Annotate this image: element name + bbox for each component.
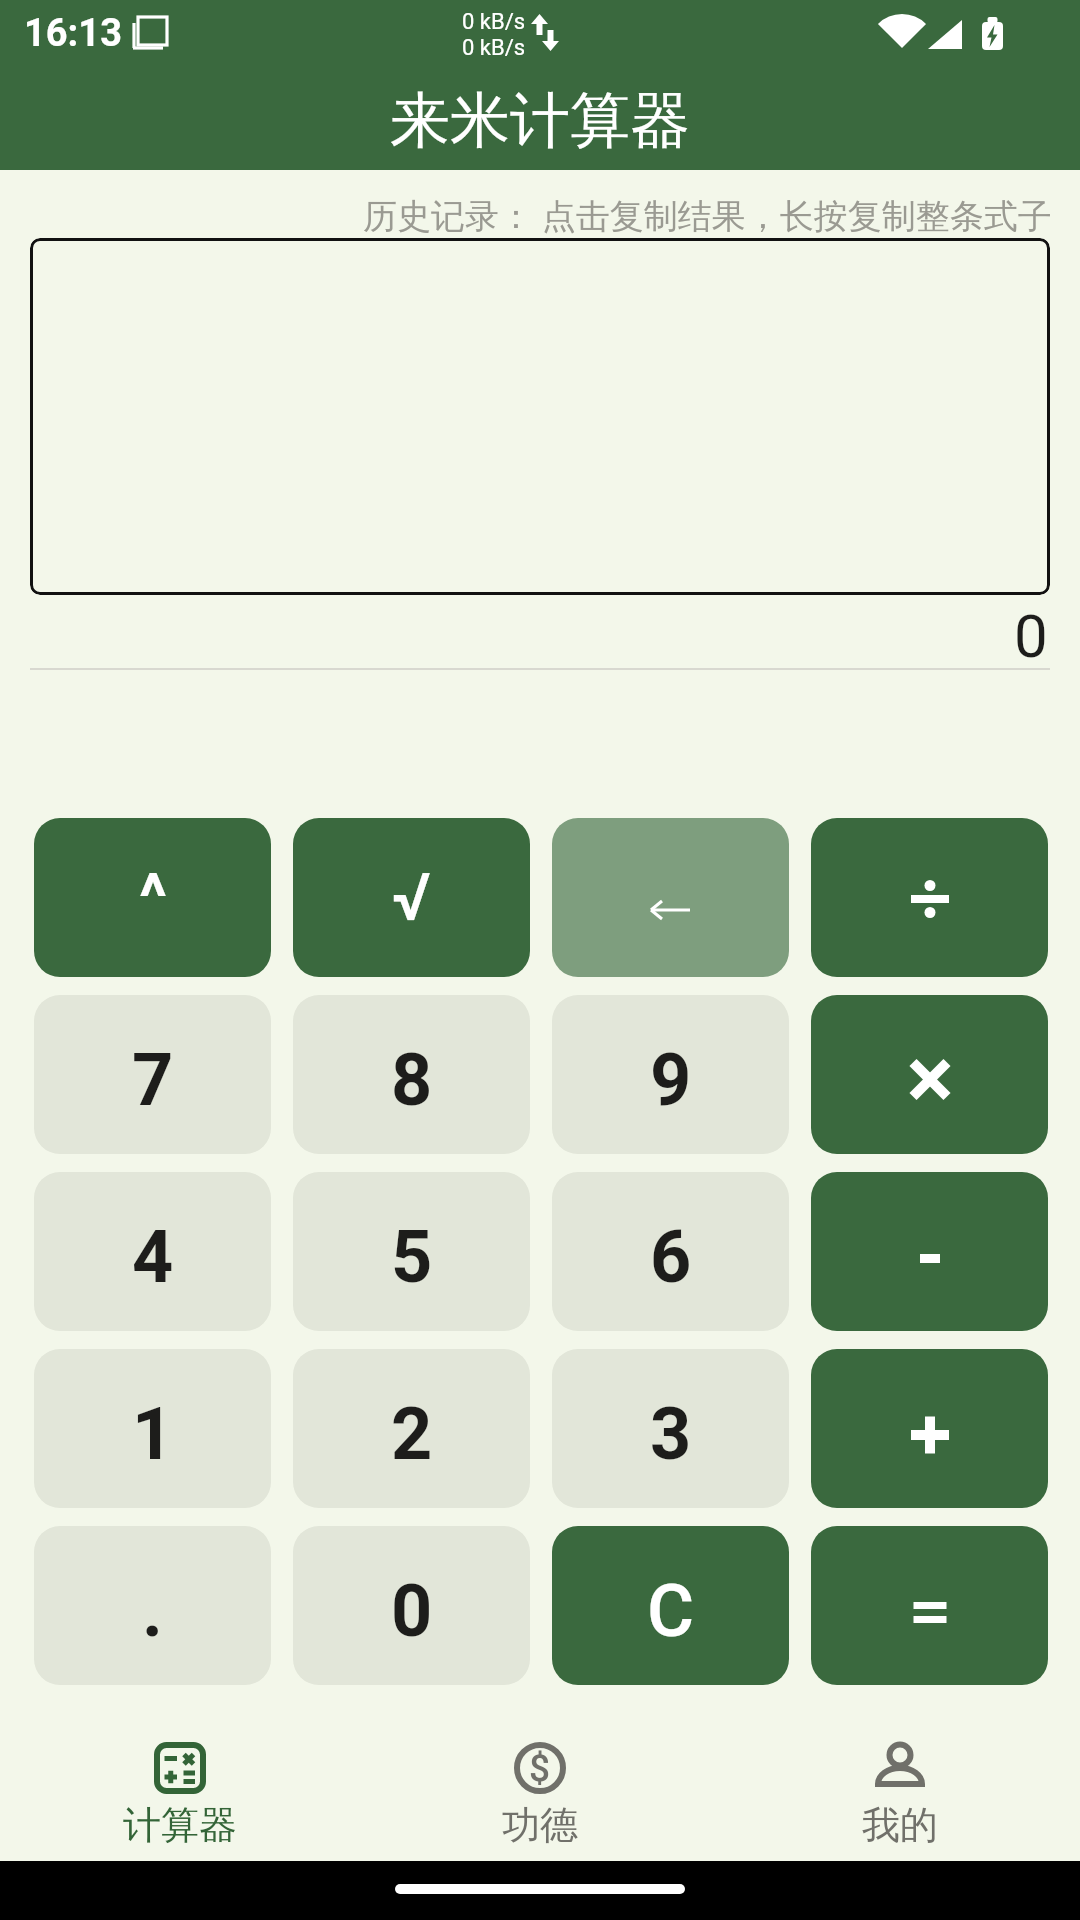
button[interactable] xyxy=(811,1349,1048,1508)
button[interactable] xyxy=(811,818,1048,977)
button[interactable]: 8 xyxy=(293,995,530,1154)
staticText: . xyxy=(142,1569,163,1653)
staticText: ^ xyxy=(139,860,167,935)
staticText: 8 xyxy=(391,1038,433,1122)
staticText: 16:13 xyxy=(24,11,122,56)
staticText: 0 kB/s xyxy=(462,9,526,35)
button[interactable]: 2 xyxy=(293,1349,530,1508)
button[interactable] xyxy=(552,818,789,977)
button[interactable]: 4 xyxy=(34,1172,271,1331)
button[interactable]: 7 xyxy=(34,995,271,1154)
button[interactable]: 0 xyxy=(293,1526,530,1685)
button[interactable]: C xyxy=(552,1526,789,1685)
staticText: 计算器 xyxy=(123,1801,237,1849)
staticText: 来米计算器 xyxy=(390,83,690,159)
button[interactable]: 我的 xyxy=(720,1712,1080,1861)
staticText: 9 xyxy=(650,1038,692,1122)
staticText: 0 xyxy=(1014,601,1048,671)
button[interactable]: 6 xyxy=(552,1172,789,1331)
staticText: $ xyxy=(529,1747,551,1790)
button[interactable]: 3 xyxy=(552,1349,789,1508)
button[interactable]: √ xyxy=(293,818,530,977)
button[interactable]: ^ xyxy=(34,818,271,977)
staticText: 4 xyxy=(132,1215,174,1299)
button[interactable]: . xyxy=(34,1526,271,1685)
button[interactable]: $ xyxy=(360,1712,720,1861)
button[interactable]: 计算器 xyxy=(0,1712,360,1861)
button[interactable] xyxy=(30,238,1050,595)
staticText: 5 xyxy=(391,1215,433,1299)
staticText: 历史记录： 点击复制结果，长按复制整条式子 xyxy=(363,192,1052,238)
staticText: 1 xyxy=(132,1392,174,1476)
staticText: 0 xyxy=(391,1569,433,1653)
staticText: √ xyxy=(392,859,431,936)
button[interactable]: 9 xyxy=(552,995,789,1154)
staticText: 6 xyxy=(650,1215,692,1299)
staticText: C xyxy=(647,1569,695,1653)
button[interactable] xyxy=(811,1172,1048,1331)
staticText: 我的 xyxy=(862,1801,938,1849)
button[interactable]: 5 xyxy=(293,1172,530,1331)
staticText: 功德 xyxy=(502,1801,578,1849)
button[interactable]: 1 xyxy=(34,1349,271,1508)
staticText: 0 kB/s xyxy=(462,35,526,61)
staticText: 3 xyxy=(650,1392,692,1476)
button[interactable] xyxy=(811,1526,1048,1685)
staticText: 7 xyxy=(132,1038,174,1122)
staticText: 2 xyxy=(391,1392,433,1476)
button[interactable] xyxy=(811,995,1048,1154)
